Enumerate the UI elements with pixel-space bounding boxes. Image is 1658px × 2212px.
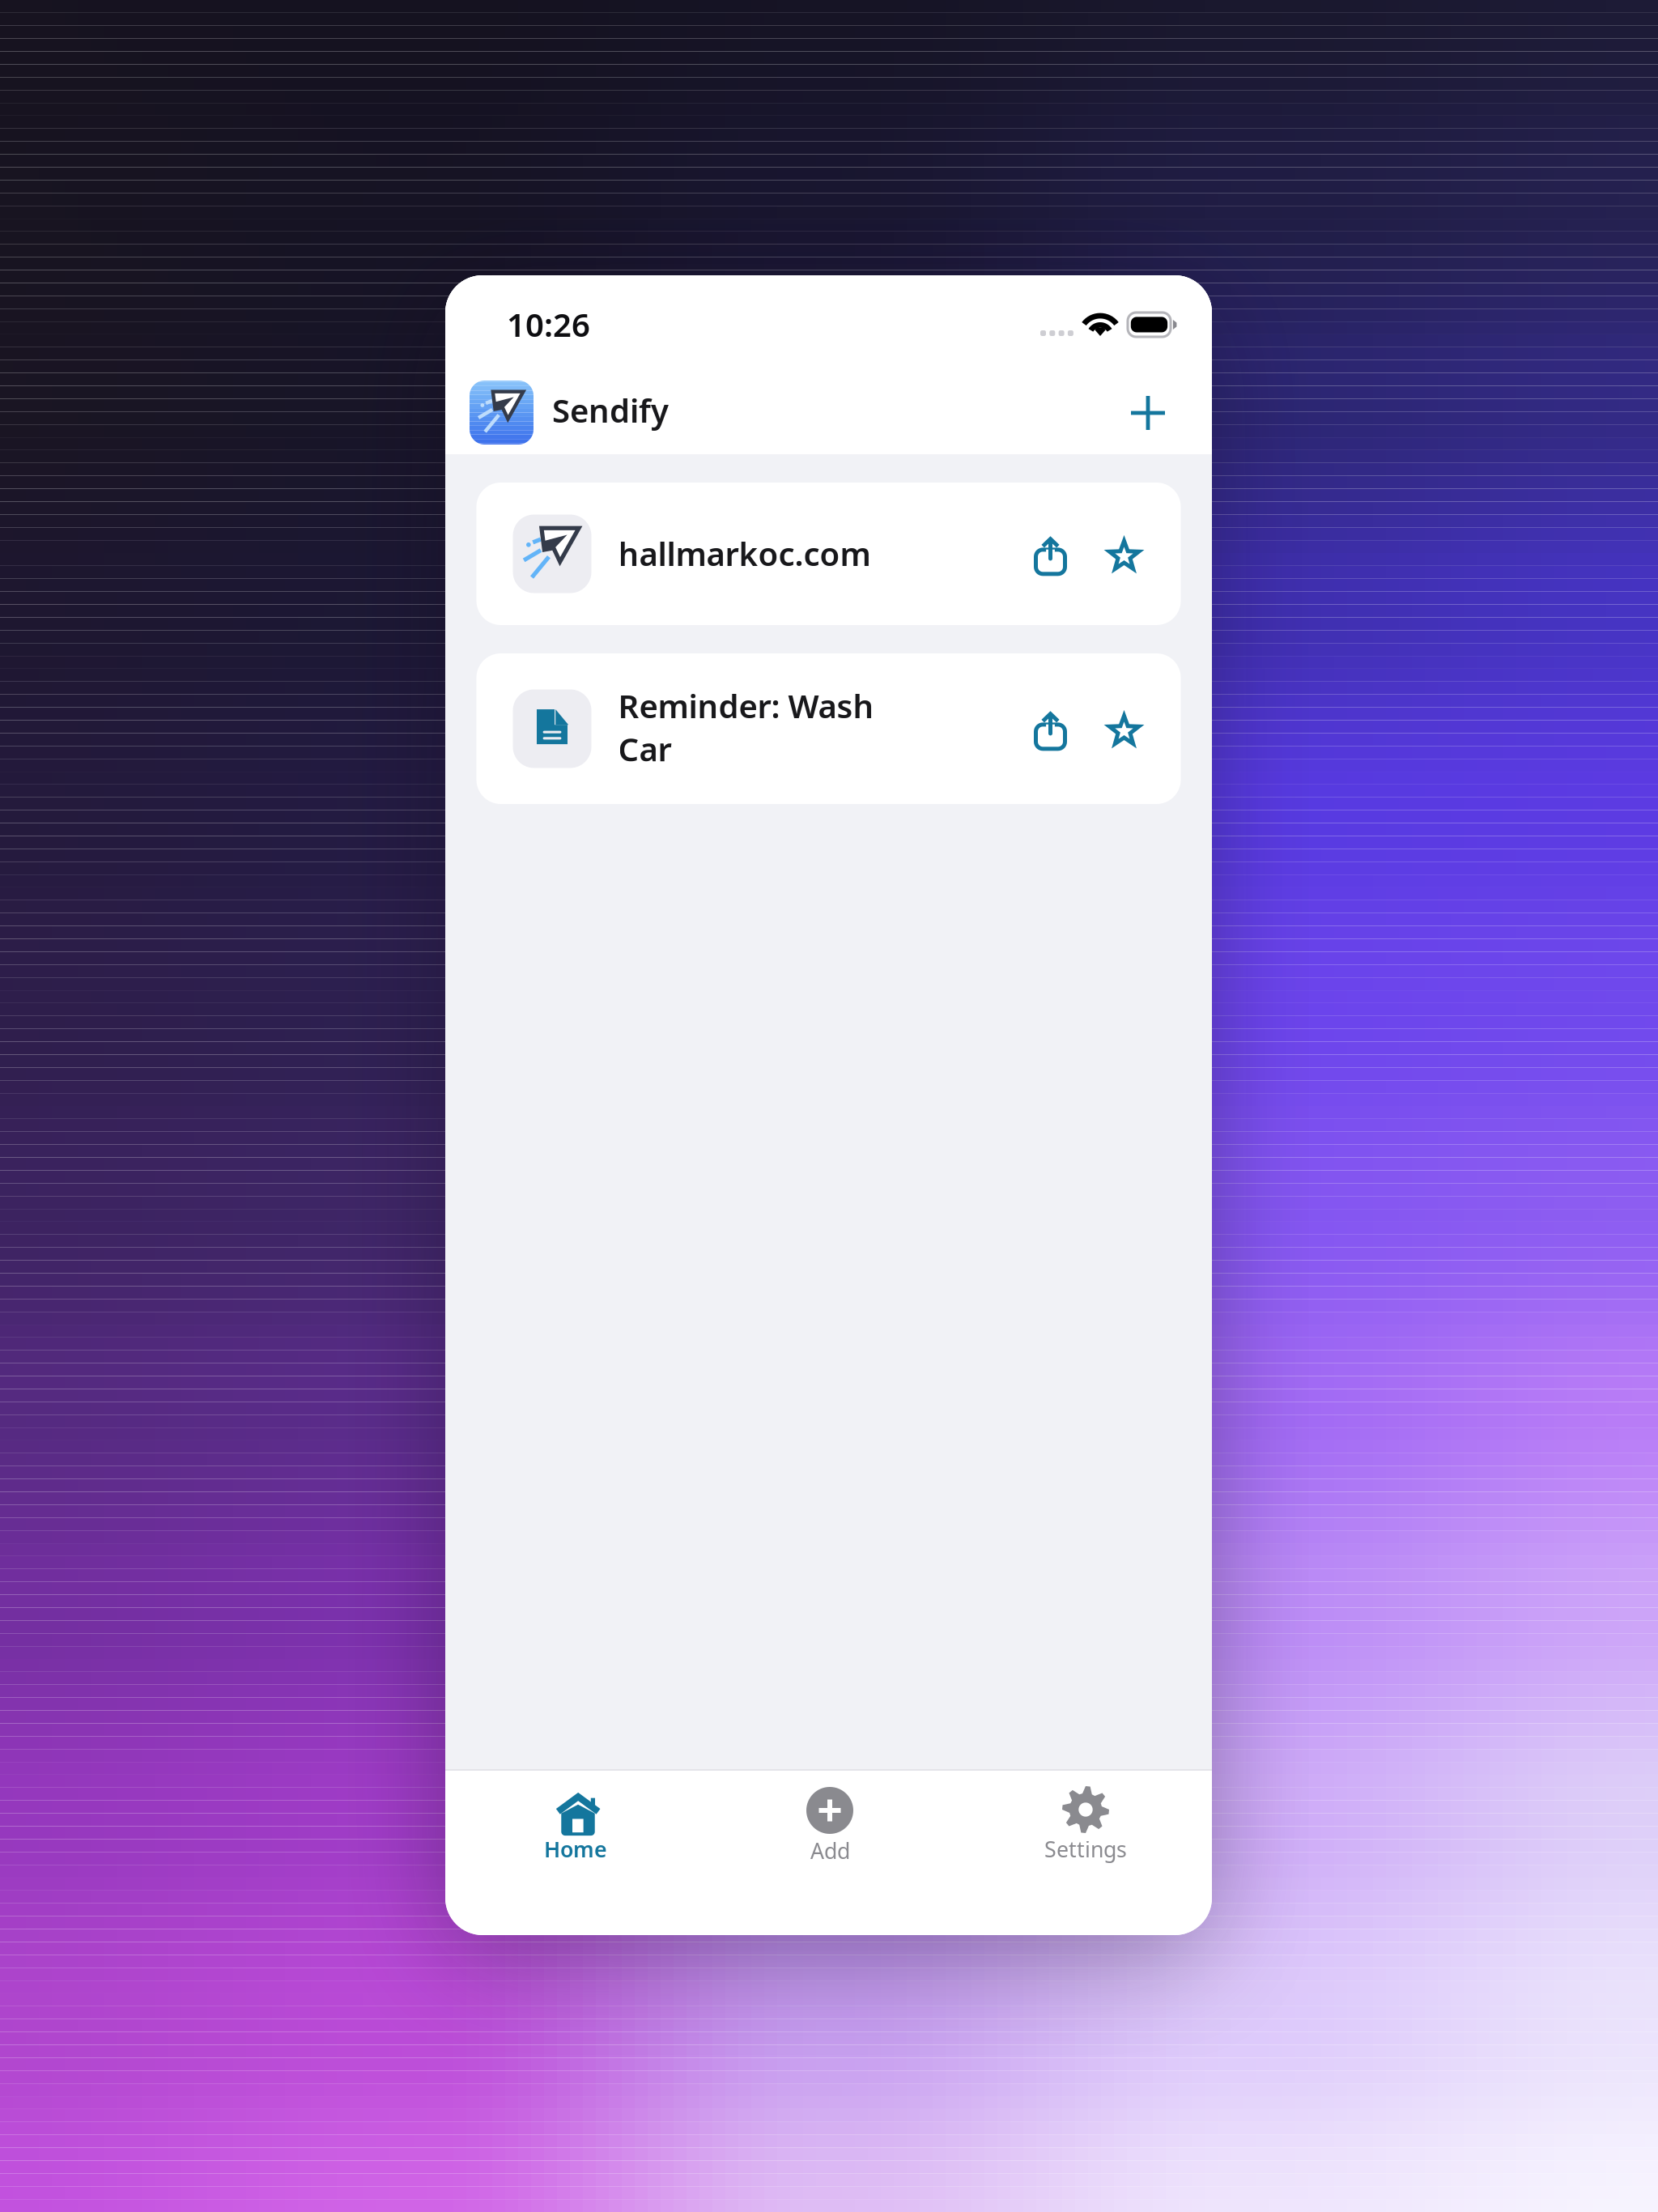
button[interactable]: Favourite: [1095, 689, 1153, 768]
staticText: Settings: [1044, 1835, 1127, 1863]
staticText: Add: [810, 1836, 850, 1865]
staticText: Home: [544, 1835, 607, 1863]
button[interactable]: Home: [445, 1771, 701, 1868]
button[interactable]: Add: [1112, 377, 1184, 449]
button[interactable]: Favourite: [1095, 515, 1153, 593]
button[interactable]: Add: [701, 1771, 957, 1868]
button[interactable]: Share: [1021, 689, 1080, 768]
staticText: Sendify: [552, 389, 669, 432]
button[interactable]: Share: [1021, 515, 1080, 593]
staticText: hallmarkoc.com: [618, 532, 871, 575]
staticText: 10:26: [507, 303, 590, 346]
button[interactable]: Settings: [957, 1771, 1212, 1868]
staticText: Reminder: Wash Car: [618, 684, 874, 770]
